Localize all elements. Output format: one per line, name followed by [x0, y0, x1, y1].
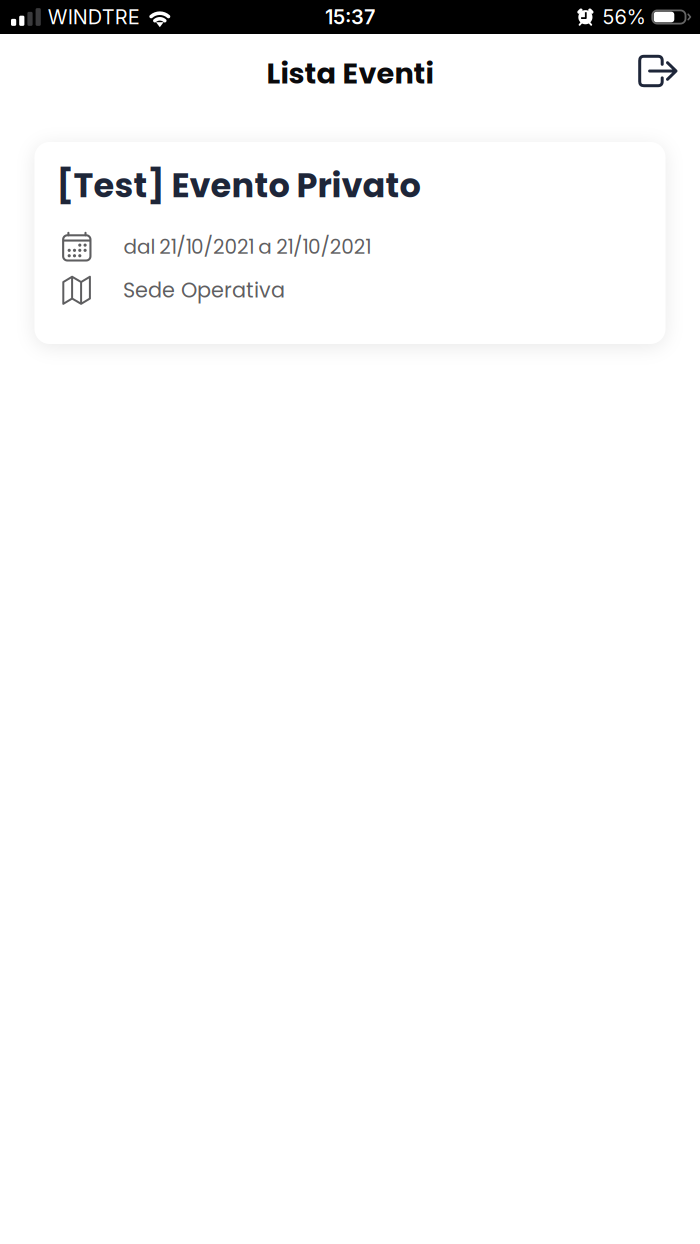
staticText: 15:37	[325, 5, 375, 29]
button[interactable]: Log out	[627, 43, 689, 98]
staticText: Sede Operativa	[123, 276, 285, 305]
staticText: Lista Eventi	[266, 53, 433, 94]
staticText: WINDTRE	[48, 5, 140, 29]
button[interactable]: [Test] Evento Privato	[34, 142, 665, 344]
staticText: [Test] Evento Privato	[56, 162, 420, 209]
staticText: dal 21/10/2021 a 21/10/2021	[123, 233, 371, 261]
staticText: 56%	[602, 5, 645, 29]
